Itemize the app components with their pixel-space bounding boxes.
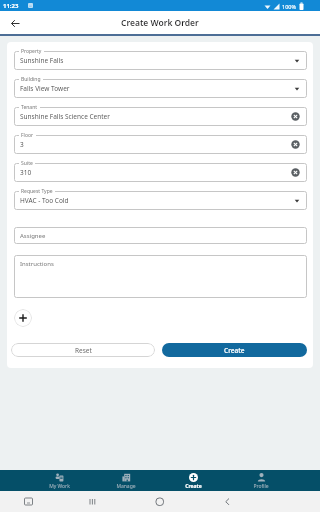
staticText: 100% [282,3,297,10]
button[interactable]: Profile [239,470,283,491]
staticText: 310 [20,168,32,177]
button[interactable]: Manage [104,470,148,491]
staticText: Tenant [21,104,38,111]
button[interactable] [14,309,32,327]
staticText: My Work [49,483,70,490]
button[interactable]: Sunshine Falls Science Center [14,107,307,126]
button[interactable]: Create [162,343,307,357]
staticText: Create Work Order [121,17,199,29]
staticText: 11:23 [3,2,19,10]
button[interactable]: Create [171,470,215,491]
staticText: Floor [21,132,34,139]
staticText: 3 [20,140,24,149]
staticText: Request Type [21,188,53,195]
staticText: Create [224,346,245,355]
staticText: Suite [21,160,33,167]
staticText: Sunshine Falls Science Center [20,112,110,121]
staticText: Reset [75,346,92,355]
button[interactable]: 3 [14,135,307,154]
staticText: Assignee [20,232,46,240]
staticText: Falls View Tower [20,84,70,93]
staticText: Profile [253,483,269,490]
staticText: Manage [116,483,136,490]
button[interactable]: Assignee [14,227,307,244]
button[interactable]: Instructions [14,255,307,298]
button[interactable]: Sunshine Falls [14,51,307,70]
staticText: Sunshine Falls [20,56,64,65]
button[interactable]: Falls View Tower [14,79,307,98]
button[interactable]: 310 [14,163,307,182]
staticText: Property [21,48,42,55]
staticText: Create [185,483,202,490]
staticText: Building [21,76,41,83]
staticText: Instructions [20,260,54,268]
button[interactable] [9,17,21,29]
button[interactable]: My Work [37,470,81,491]
staticText: HVAC - Too Cold [20,196,69,205]
button[interactable]: HVAC - Too Cold [14,191,307,210]
button[interactable]: Reset [11,343,155,357]
